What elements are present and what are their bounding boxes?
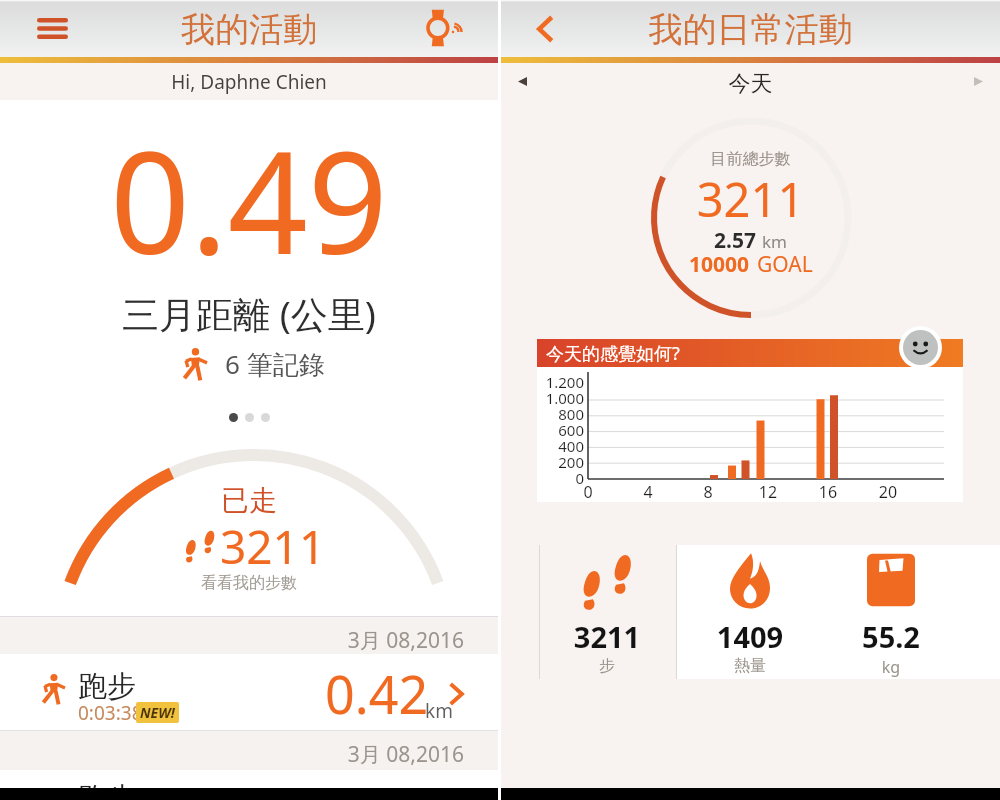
staticText: 3月 08,2016 — [0, 740, 464, 769]
staticText: 2.57 — [714, 226, 756, 255]
staticText: 3211 — [501, 167, 1000, 231]
staticText: 跑步 — [78, 668, 136, 705]
staticText: km — [762, 230, 787, 253]
staticText: 0:03:38 — [78, 700, 143, 726]
staticText: 8 — [698, 481, 718, 503]
staticText: 今天的感覺如何? — [546, 341, 680, 366]
staticText: 0 — [578, 481, 598, 503]
staticText: km — [425, 698, 453, 724]
staticText: 3211 — [220, 515, 326, 578]
button[interactable]: Mood — [903, 330, 938, 365]
staticText: GOAL — [757, 250, 813, 279]
staticText: 1.200 — [537, 372, 584, 392]
button[interactable]: 1409 — [669, 545, 831, 679]
staticText: 跑步 — [78, 780, 136, 800]
staticText: 已走 — [0, 483, 498, 518]
staticText: 600 — [537, 420, 584, 440]
staticText: 400 — [537, 436, 584, 456]
button[interactable]: 3211 — [526, 545, 688, 679]
staticText: 12 — [758, 481, 778, 503]
staticText: 20 — [878, 481, 898, 503]
staticText: 3月 08,2016 — [0, 626, 464, 655]
staticText: 1409 — [669, 617, 831, 656]
staticText: NEW! — [140, 703, 175, 722]
staticText: 3211 — [526, 617, 688, 656]
staticText: 步 — [526, 656, 688, 676]
staticText: 200 — [537, 452, 584, 472]
staticText: 0.49 — [0, 104, 498, 295]
staticText: 熱量 — [669, 656, 831, 676]
staticText: 10000 — [689, 250, 750, 279]
staticText: kg — [810, 656, 972, 678]
staticText: 今天 — [501, 70, 1000, 98]
staticText: 三月距離 (公里) — [0, 288, 498, 339]
staticText: 1.000 — [537, 388, 584, 408]
staticText: 看看我的步數 — [0, 573, 498, 593]
button[interactable]: Connect watch — [424, 8, 466, 48]
staticText: Hi, Daphne Chien — [0, 69, 498, 95]
button[interactable]: Back — [529, 12, 563, 46]
staticText: 6 筆記錄 — [225, 346, 325, 382]
button[interactable]: Menu — [30, 6, 75, 51]
staticText: 4 — [638, 481, 658, 503]
staticText: 0.42 — [325, 658, 429, 729]
staticText: 16 — [818, 481, 838, 503]
staticText: 我的活動 — [0, 8, 498, 51]
staticText: 0 — [537, 468, 584, 488]
staticText: 55.2 — [810, 617, 972, 656]
staticText: 目前總步數 — [501, 149, 1000, 169]
button[interactable]: 55.2 — [810, 545, 972, 679]
staticText: 我的日常活動 — [501, 8, 1000, 51]
button[interactable]: 跑步 — [0, 654, 498, 731]
staticText: 800 — [537, 404, 584, 424]
